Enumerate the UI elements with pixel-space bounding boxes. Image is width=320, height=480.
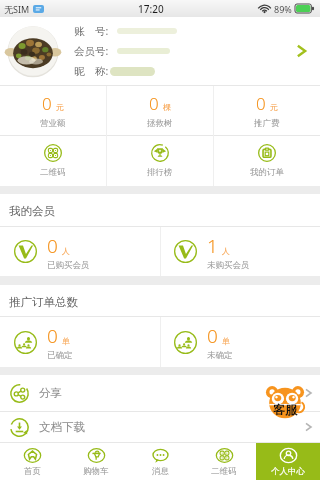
button[interactable]: 账 号: xyxy=(0,17,320,85)
staticText: 单 xyxy=(62,336,70,346)
staticText: 首页 xyxy=(24,466,41,477)
staticText: 二维码 xyxy=(211,466,237,477)
staticText: 0 xyxy=(47,323,58,349)
button[interactable]: 0 xyxy=(213,86,320,135)
staticText: 购物车 xyxy=(83,466,109,477)
button[interactable]: 文档下载 xyxy=(0,412,320,442)
staticText: 0 xyxy=(47,233,58,259)
button[interactable]: 客服 xyxy=(264,387,306,419)
button[interactable]: 二维码 xyxy=(192,443,256,480)
staticText: 0 xyxy=(149,92,159,115)
button[interactable]: 0 xyxy=(160,317,320,367)
button[interactable]: 排行榜 xyxy=(106,136,213,186)
staticText: 我的订单 xyxy=(250,167,284,178)
staticText: 0 xyxy=(207,323,218,349)
staticText: 已购买会员 xyxy=(47,260,90,271)
staticText: 0 xyxy=(256,92,266,115)
staticText: 营业额 xyxy=(40,118,66,129)
staticText: 推广订单总数 xyxy=(9,295,78,309)
staticText: 已确定 xyxy=(47,350,73,361)
staticText: 未确定 xyxy=(207,350,233,361)
button[interactable]: 1 xyxy=(160,227,320,276)
button[interactable]: 0 xyxy=(0,317,160,367)
staticText: 单 xyxy=(222,336,230,346)
staticText: 无SIM xyxy=(4,3,30,15)
button[interactable]: 二维码 xyxy=(0,136,106,186)
button[interactable]: 首页 xyxy=(0,443,64,480)
staticText: 拯救树 xyxy=(147,118,173,129)
staticText: 消息 xyxy=(152,466,169,477)
staticText: 棵 xyxy=(163,102,171,112)
staticText: 人 xyxy=(62,246,70,256)
staticText: 昵 称: xyxy=(74,64,109,78)
staticText: 分享 xyxy=(39,386,62,400)
staticText: 17:20 xyxy=(138,2,164,16)
staticText: 排行榜 xyxy=(147,167,173,178)
button[interactable]: 分享 xyxy=(0,375,320,411)
staticText: 人 xyxy=(222,246,230,256)
button[interactable]: 0 xyxy=(0,86,106,135)
button[interactable]: 购物车 xyxy=(64,443,128,480)
button[interactable]: 消息 xyxy=(128,443,192,480)
button[interactable]: 0 xyxy=(0,227,160,276)
staticText: 元 xyxy=(270,102,278,112)
staticText: 89% xyxy=(274,3,292,15)
staticText: 我的会员 xyxy=(9,204,55,218)
staticText: 元 xyxy=(56,102,64,112)
staticText: 推广费 xyxy=(254,118,280,129)
staticText: 客服 xyxy=(273,402,297,417)
button[interactable]: 个人中心 xyxy=(256,443,320,480)
staticText: 个人中心 xyxy=(271,466,305,477)
button[interactable]: 0 xyxy=(106,86,213,135)
staticText: 会员号: xyxy=(74,44,109,58)
staticText: 二维码 xyxy=(40,167,66,178)
staticText: 文档下载 xyxy=(39,420,85,434)
staticText: 账 号: xyxy=(74,24,109,38)
staticText: 1 xyxy=(207,233,218,259)
button[interactable]: 我的订单 xyxy=(213,136,320,186)
staticText: 未购买会员 xyxy=(207,260,250,271)
staticText: 0 xyxy=(42,92,52,115)
